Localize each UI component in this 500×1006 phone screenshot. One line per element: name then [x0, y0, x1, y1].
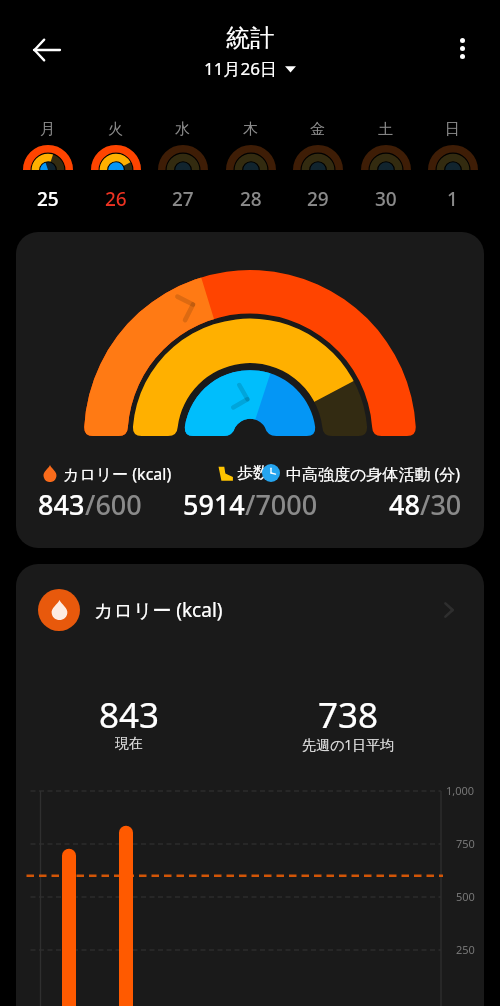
staticText: 843 — [38, 486, 85, 523]
staticText: 843 — [99, 691, 160, 739]
button[interactable]: 月 — [14, 112, 81, 210]
button[interactable]: カロリー (kcal) — [16, 232, 484, 548]
button[interactable]: 土 — [352, 112, 419, 210]
staticText: 歩数 — [237, 463, 269, 483]
staticText: 月 — [40, 120, 55, 139]
staticText: 金 — [310, 120, 325, 139]
staticText: 11月26日 — [204, 57, 277, 80]
button[interactable]: 日 — [419, 112, 486, 210]
staticText: 48 — [389, 486, 420, 523]
staticText: 土 — [378, 120, 393, 139]
staticText: 火 — [108, 120, 123, 139]
button[interactable]: カロリー (kcal) — [16, 564, 484, 656]
staticText: 738 — [318, 691, 379, 739]
staticText: 水 — [175, 120, 190, 139]
staticText: 木 — [243, 120, 258, 139]
staticText: 25 — [37, 186, 59, 212]
staticText: 5914 — [183, 486, 245, 523]
staticText: /30 — [420, 486, 462, 523]
staticText: 500 — [456, 889, 475, 904]
staticText: 250 — [456, 942, 475, 957]
staticText: 1,000 — [446, 783, 475, 798]
staticText: /7000 — [245, 486, 318, 523]
button[interactable]: 火 — [82, 112, 149, 210]
button[interactable]: 金 — [284, 112, 351, 210]
button[interactable]: 11月26日 — [204, 57, 296, 80]
staticText: 28 — [240, 186, 262, 212]
staticText: カロリー (kcal) — [63, 463, 172, 485]
button[interactable]: 戻る — [19, 22, 75, 78]
staticText: 統計 — [226, 23, 274, 53]
staticText: 26 — [105, 186, 127, 212]
staticText: 日 — [445, 120, 460, 139]
staticText: 先週の1日平均 — [302, 735, 395, 754]
staticText: 29 — [307, 186, 329, 212]
staticText: 現在 — [115, 735, 143, 753]
staticText: /600 — [85, 486, 142, 523]
staticText: 27 — [172, 186, 194, 212]
staticText: 中高強度の身体活動 (分) — [286, 463, 461, 485]
staticText: 750 — [456, 836, 475, 851]
button[interactable]: 水 — [149, 112, 216, 210]
staticText: 30 — [375, 186, 397, 212]
button[interactable]: 木 — [217, 112, 284, 210]
staticText: 1 — [447, 186, 458, 212]
button[interactable]: その他のオプション — [436, 22, 488, 74]
staticText: カロリー (kcal) — [94, 597, 223, 623]
